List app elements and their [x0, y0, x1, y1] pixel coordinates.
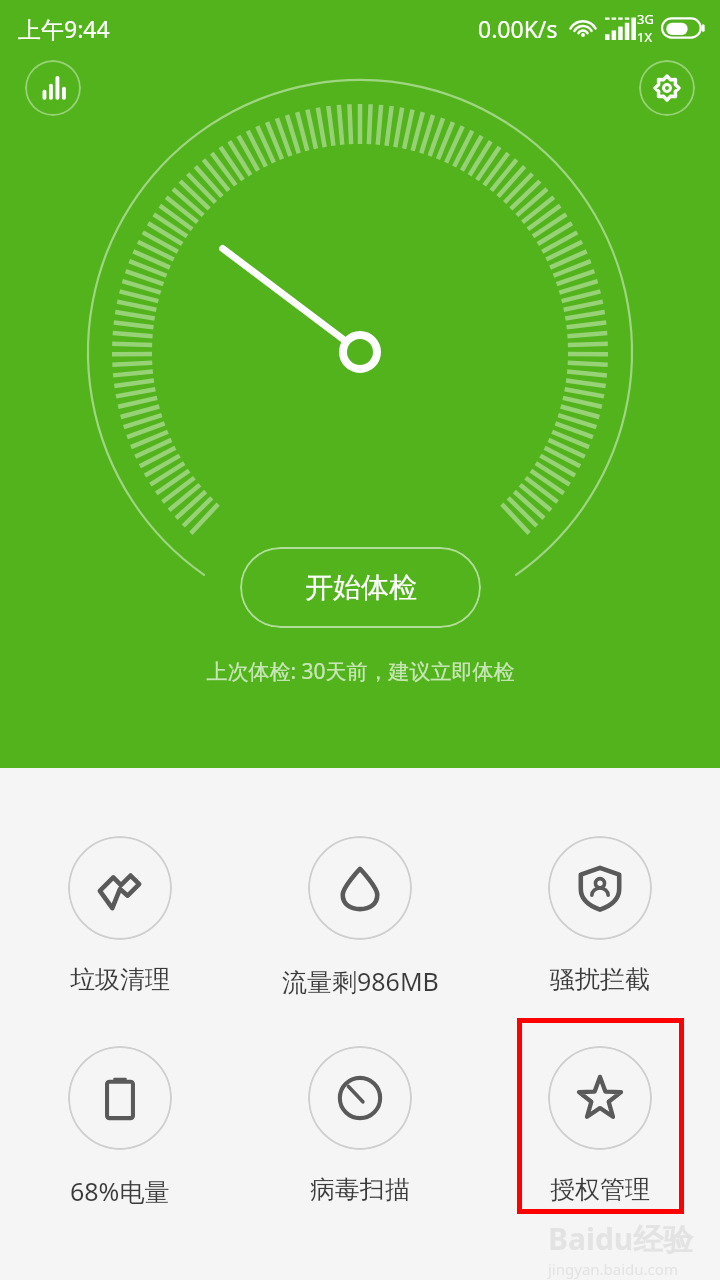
- button[interactable]: Statistics: [25, 60, 81, 116]
- staticText: 授权管理: [550, 1174, 650, 1205]
- button[interactable]: 68%电量: [0, 1046, 240, 1208]
- button[interactable]: 流量剩986MB: [240, 836, 480, 998]
- staticText: Baidu经验: [548, 1218, 694, 1259]
- staticText: 68%电量: [70, 1174, 170, 1208]
- button[interactable]: 病毒扫描: [240, 1046, 480, 1205]
- staticText: 3G: [637, 10, 654, 28]
- button[interactable]: 开始体检: [240, 547, 481, 628]
- staticText: 上次体检: 30天前，建议立即体检: [206, 657, 515, 686]
- staticText: 0.00K/s: [478, 13, 558, 44]
- button[interactable]: 骚扰拦截: [480, 836, 720, 995]
- staticText: 开始体检: [305, 570, 417, 605]
- staticText: 病毒扫描: [310, 1174, 410, 1205]
- button[interactable]: 授权管理: [480, 1046, 720, 1205]
- button[interactable]: 垃圾清理: [0, 836, 240, 995]
- staticText: 1X: [637, 28, 653, 46]
- staticText: 流量剩986MB: [282, 964, 439, 998]
- staticText: 骚扰拦截: [550, 964, 650, 995]
- staticText: 上午9:44: [18, 13, 110, 44]
- button[interactable]: Settings: [639, 60, 695, 116]
- staticText: 垃圾清理: [70, 964, 170, 995]
- staticText: jingyan.baidu.com: [548, 1259, 678, 1279]
